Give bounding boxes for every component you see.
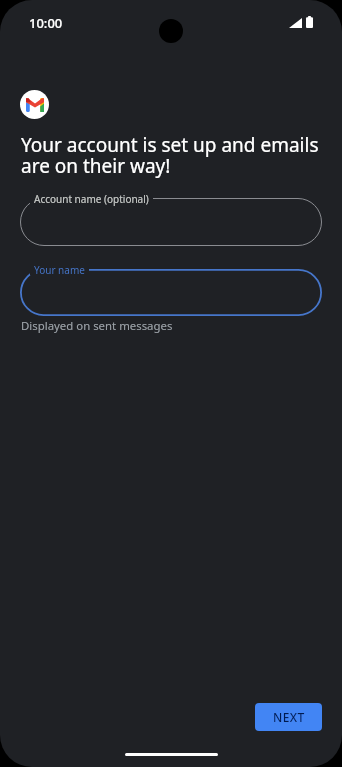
other: Battery bbox=[306, 16, 313, 28]
button[interactable]: Your name bbox=[20, 269, 322, 316]
staticText: 10:00 bbox=[29, 14, 63, 32]
staticText: Your name bbox=[34, 263, 85, 277]
staticText: Displayed on sent messages bbox=[21, 318, 173, 334]
button[interactable]: Account name (optional) bbox=[20, 198, 322, 246]
other: Mobile signal bbox=[289, 18, 302, 28]
staticText: NEXT bbox=[273, 709, 305, 725]
staticText: Your account is set up and emails are on… bbox=[21, 132, 321, 179]
staticText: Account name (optional) bbox=[34, 192, 149, 206]
button[interactable]: NEXT bbox=[255, 703, 322, 731]
